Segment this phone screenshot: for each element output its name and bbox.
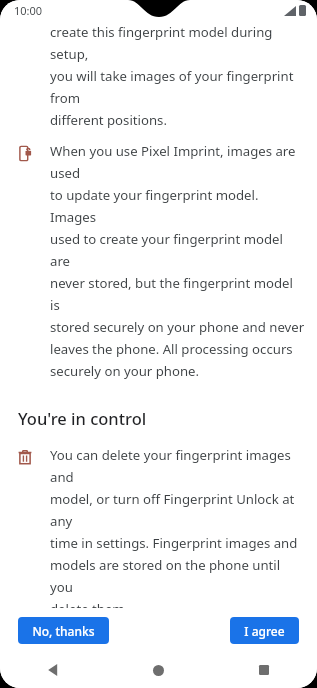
staticText: I agree (244, 623, 285, 639)
button[interactable]: No, thanks (18, 617, 109, 644)
button[interactable]: Back (0, 652, 105, 688)
button[interactable]: Home (105, 652, 211, 688)
staticText: 10:00 (14, 3, 43, 18)
button[interactable]: Recent apps (211, 652, 317, 688)
staticText: You're in control (18, 407, 147, 429)
button[interactable]: I agree (230, 617, 299, 644)
staticText: No, thanks (32, 623, 95, 639)
staticText: When you use Pixel Imprint, images are u… (50, 142, 305, 380)
staticText: create this fingerprint model during set… (50, 23, 303, 129)
staticText: You can delete your fingerprint images a… (50, 446, 305, 608)
